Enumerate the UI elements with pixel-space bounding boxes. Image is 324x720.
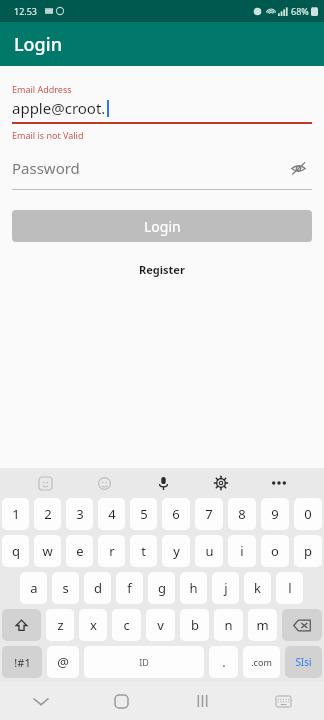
staticText: q xyxy=(12,542,20,560)
staticText: Email Address xyxy=(12,83,72,95)
button[interactable]: .com xyxy=(243,646,280,678)
staticText: 68% xyxy=(291,5,309,17)
staticText: Login xyxy=(14,32,62,57)
button[interactable]: y xyxy=(162,535,190,567)
button[interactable]: a xyxy=(20,572,47,604)
staticText: y xyxy=(173,542,180,560)
button[interactable]: j xyxy=(212,572,239,604)
button[interactable]: z xyxy=(46,609,74,641)
button[interactable]: Home xyxy=(81,682,162,720)
button[interactable]: l xyxy=(276,572,303,604)
staticText: 12.53 xyxy=(14,5,38,17)
button[interactable]: f xyxy=(116,572,143,604)
staticText: 9 xyxy=(271,505,279,523)
staticText: 2 xyxy=(44,505,52,523)
button[interactable]: 3 xyxy=(66,498,93,530)
button[interactable]: 0 xyxy=(294,498,322,530)
button[interactable]: k xyxy=(244,572,271,604)
button[interactable]: n xyxy=(214,609,243,641)
button[interactable]: Backspace xyxy=(282,609,322,641)
button[interactable]: Keyboard settings xyxy=(192,468,250,498)
button[interactable]: !#1 xyxy=(2,646,42,678)
button[interactable]: 2 xyxy=(34,498,61,530)
button[interactable]: d xyxy=(84,572,111,604)
button[interactable]: Recent apps xyxy=(162,682,243,720)
staticText: s xyxy=(62,579,69,597)
staticText: 4 xyxy=(108,505,116,523)
button[interactable]: v xyxy=(146,609,175,641)
staticText: v xyxy=(157,616,164,634)
button[interactable]: ID xyxy=(84,646,204,678)
staticText: d xyxy=(94,579,102,597)
button[interactable]: e xyxy=(66,535,93,567)
staticText: h xyxy=(189,579,198,597)
staticText: z xyxy=(57,616,64,634)
staticText: 1 xyxy=(12,505,20,523)
button[interactable]: Register xyxy=(12,262,312,277)
button[interactable]: p xyxy=(294,535,322,567)
button[interactable]: Show password xyxy=(284,154,312,182)
staticText: Register xyxy=(139,262,185,277)
button[interactable]: 4 xyxy=(98,498,125,530)
button[interactable]: g xyxy=(148,572,175,604)
staticText: f xyxy=(127,579,132,597)
button[interactable]: More options xyxy=(250,468,308,498)
staticText: 7 xyxy=(205,505,213,523)
button[interactable]: Voice input xyxy=(134,468,192,498)
button[interactable]: 9 xyxy=(261,498,289,530)
staticText: n xyxy=(224,616,233,634)
button[interactable]: SIsi xyxy=(285,646,322,678)
button[interactable]: q xyxy=(2,535,29,567)
button[interactable]: o xyxy=(261,535,289,567)
button[interactable]: 8 xyxy=(228,498,256,530)
staticText: a xyxy=(30,579,38,597)
staticText: l xyxy=(288,579,292,597)
button[interactable]: m xyxy=(248,609,277,641)
button[interactable]: . xyxy=(209,646,238,678)
button[interactable]: @ xyxy=(47,646,79,678)
button[interactable]: r xyxy=(98,535,125,567)
button[interactable]: Login xyxy=(12,210,312,242)
button[interactable]: t xyxy=(130,535,157,567)
button[interactable]: 1 xyxy=(2,498,29,530)
staticText: .com xyxy=(251,656,272,668)
staticText: e xyxy=(76,542,84,560)
button[interactable]: s xyxy=(52,572,79,604)
button[interactable]: u xyxy=(195,535,223,567)
button[interactable]: i xyxy=(228,535,256,567)
staticText: b xyxy=(191,616,199,634)
button[interactable]: 5 xyxy=(130,498,157,530)
staticText: 5 xyxy=(140,505,148,523)
button[interactable]: Emoji xyxy=(75,468,134,498)
staticText: k xyxy=(254,579,261,597)
button[interactable]: c xyxy=(112,609,141,641)
button[interactable]: Keyboard layout xyxy=(243,682,324,720)
staticText: ID xyxy=(139,656,149,668)
staticText: t xyxy=(141,542,146,560)
staticText: x xyxy=(90,616,97,634)
staticText: SIsi xyxy=(295,655,312,669)
staticText: i xyxy=(240,542,244,560)
staticText: Password xyxy=(12,158,284,178)
staticText: j xyxy=(224,579,228,597)
button[interactable]: 7 xyxy=(195,498,223,530)
staticText: 0 xyxy=(304,505,312,523)
button[interactable]: 6 xyxy=(162,498,190,530)
staticText: Login xyxy=(144,217,181,236)
button[interactable]: h xyxy=(180,572,207,604)
button[interactable]: w xyxy=(34,535,61,567)
button[interactable]: b xyxy=(180,609,209,641)
staticText: r xyxy=(109,542,115,560)
staticText: @ xyxy=(57,653,69,671)
button[interactable]: Stickers xyxy=(16,468,75,498)
button[interactable]: Shift xyxy=(2,609,41,641)
staticText: Email is not Valid xyxy=(12,129,84,141)
staticText: 8 xyxy=(238,505,246,523)
button[interactable]: Hide keyboard xyxy=(0,682,81,720)
staticText: c xyxy=(123,616,130,634)
staticText: . xyxy=(222,653,226,671)
staticText: 3 xyxy=(76,505,84,523)
staticText: m xyxy=(256,616,269,634)
staticText: g xyxy=(158,579,166,597)
button[interactable]: x xyxy=(79,609,107,641)
